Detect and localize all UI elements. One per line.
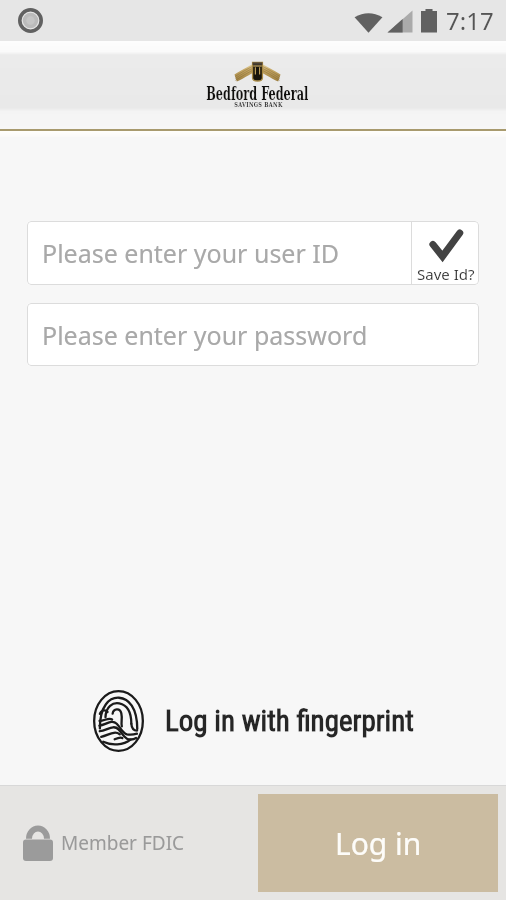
button[interactable]: Log in with fingerprint: [0, 690, 506, 752]
button[interactable]: Log in: [258, 794, 498, 892]
staticText: Please enter your password: [42, 318, 368, 352]
staticText: Log in: [335, 823, 422, 864]
staticText: 7:17: [446, 4, 494, 37]
button[interactable]: Please enter your password: [27, 303, 479, 366]
button[interactable]: Save Id: [412, 221, 479, 285]
button[interactable]: User ID input: [27, 221, 411, 285]
button[interactable]: Member FDIC: [23, 825, 185, 861]
staticText: Save Id?: [417, 264, 475, 284]
staticText: Member FDIC: [61, 830, 185, 856]
staticText: Log in with fingerprint: [165, 704, 414, 738]
staticText: Please enter your user ID: [42, 236, 340, 270]
staticText: SAVINGS BANK: [234, 99, 283, 108]
staticText: Bedford Federal: [206, 83, 309, 104]
